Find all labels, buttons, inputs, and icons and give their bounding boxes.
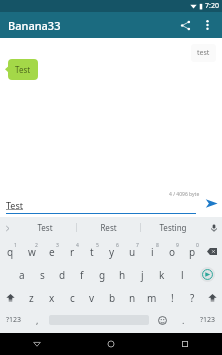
staticText: y	[109, 245, 115, 259]
button[interactable]: Send	[200, 192, 222, 214]
staticText: Rest	[100, 222, 117, 233]
button[interactable]: Recents	[148, 333, 222, 355]
staticText: Banana33	[8, 18, 61, 33]
button[interactable]: d	[52, 263, 72, 286]
button[interactable]: t	[82, 240, 102, 263]
staticText: ?123	[200, 315, 216, 325]
staticText: f	[80, 268, 84, 282]
button[interactable]: Shift	[0, 286, 21, 309]
staticText: 3	[56, 242, 59, 249]
button[interactable]: Rest	[77, 217, 140, 238]
staticText: 5	[96, 242, 99, 249]
button[interactable]: More options	[196, 14, 218, 36]
button[interactable]: ,	[28, 309, 47, 331]
button[interactable]: x	[42, 286, 62, 309]
staticText: .	[182, 314, 185, 326]
staticText: z	[29, 291, 34, 305]
staticText: ?123	[6, 315, 22, 325]
button[interactable]: e	[42, 240, 62, 263]
staticText: 4 / 4096 byte	[169, 191, 200, 198]
button[interactable]: s	[32, 263, 52, 286]
button[interactable]: Voice input	[206, 220, 222, 236]
staticText: Testing	[159, 222, 187, 233]
button[interactable]: k	[152, 263, 172, 286]
button[interactable]: Back	[0, 333, 74, 355]
staticText: v	[89, 291, 95, 305]
staticText: 1	[14, 242, 17, 249]
button[interactable]: p	[182, 240, 202, 263]
button[interactable]: f	[72, 263, 92, 286]
button[interactable]: v	[82, 286, 102, 309]
staticText: h	[119, 268, 126, 282]
button[interactable]: n	[122, 286, 142, 309]
staticText: 9	[176, 242, 179, 249]
button[interactable]: Emoji	[151, 309, 174, 331]
staticText: p	[189, 245, 196, 259]
button[interactable]: Expand suggestions	[0, 221, 14, 235]
staticText: n	[129, 291, 136, 305]
staticText: j	[141, 268, 144, 282]
button[interactable]: h	[112, 263, 132, 286]
button[interactable]: r	[62, 240, 82, 263]
staticText: Test	[37, 222, 53, 233]
staticText: r	[70, 245, 75, 259]
staticText: x	[49, 291, 55, 305]
button[interactable]: o	[162, 240, 182, 263]
staticText: u	[129, 245, 136, 259]
button[interactable]: Enter	[192, 263, 222, 286]
button[interactable]: q	[0, 240, 21, 263]
button[interactable]: c	[62, 286, 82, 309]
button[interactable]: Home	[74, 333, 148, 355]
staticText: 8	[156, 242, 159, 249]
button[interactable]: l	[172, 263, 192, 286]
button[interactable]: Share	[174, 14, 196, 36]
staticText: e	[49, 245, 55, 259]
button[interactable]: Shift	[202, 286, 222, 309]
button[interactable]: .	[174, 309, 193, 331]
button[interactable]: j	[132, 263, 152, 286]
button[interactable]: !	[162, 286, 182, 309]
staticText: b	[109, 291, 116, 305]
button[interactable]: Test	[14, 217, 76, 238]
button[interactable]: b	[102, 286, 122, 309]
button[interactable]: ?123	[193, 309, 222, 331]
button[interactable]: Testing	[141, 217, 204, 238]
button[interactable]: ?123	[0, 309, 28, 331]
staticText: a	[19, 268, 25, 282]
button[interactable]: g	[92, 263, 112, 286]
button[interactable]: Backspace	[202, 240, 222, 263]
staticText: k	[159, 268, 165, 282]
button[interactable]: test	[191, 44, 216, 62]
staticText: o	[169, 245, 176, 259]
staticText: test	[197, 48, 210, 58]
staticText: w	[28, 245, 36, 259]
button[interactable]: Test	[8, 59, 38, 80]
button[interactable]: y	[102, 240, 122, 263]
staticText: ,	[36, 314, 39, 326]
button[interactable]: ?	[182, 286, 202, 309]
staticText: g	[99, 268, 106, 282]
staticText: !	[171, 291, 174, 305]
staticText: c	[70, 291, 75, 305]
button[interactable]: z	[21, 286, 42, 309]
staticText: Test	[6, 199, 24, 211]
staticText: l	[181, 268, 184, 282]
staticText: ?	[190, 291, 195, 305]
staticText: 7	[136, 242, 139, 249]
button[interactable]: m	[142, 286, 162, 309]
staticText: Test	[15, 64, 31, 75]
staticText: 0	[196, 242, 199, 249]
staticText: 7:20	[205, 1, 219, 11]
staticText: t	[90, 245, 94, 259]
staticText: q	[7, 245, 14, 259]
staticText: m	[147, 291, 157, 305]
button[interactable]: w	[21, 240, 42, 263]
staticText: d	[59, 268, 66, 282]
button[interactable]: i	[142, 240, 162, 263]
button[interactable]: Test	[6, 199, 196, 214]
staticText: 4	[76, 242, 79, 249]
staticText: 6	[116, 242, 119, 249]
button[interactable]: a	[11, 263, 32, 286]
button[interactable]: u	[122, 240, 142, 263]
